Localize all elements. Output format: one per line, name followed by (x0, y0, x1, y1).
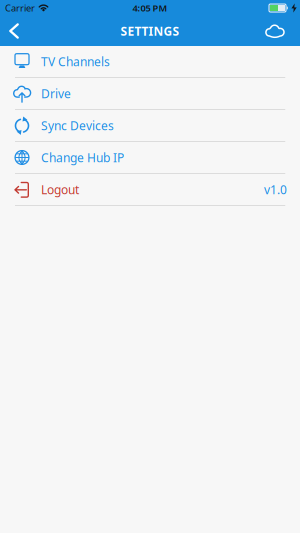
staticText: Logout (41, 181, 79, 197)
staticText: v1.0 (264, 181, 287, 197)
staticText: TV Channels (41, 53, 110, 69)
button[interactable] (263, 23, 300, 39)
staticText: Drive (41, 85, 71, 101)
button[interactable]: Drive (0, 78, 300, 110)
button[interactable]: Logout (0, 174, 300, 206)
staticText: Sync Devices (41, 117, 114, 133)
staticText: SETTINGS (120, 23, 179, 39)
button[interactable]: Sync Devices (0, 110, 300, 142)
button[interactable]: TV Channels (0, 46, 300, 78)
staticText: 4:05 PM (132, 2, 167, 14)
button[interactable]: Change Hub IP (0, 142, 300, 174)
staticText: Carrier (5, 2, 35, 14)
staticText: Change Hub IP (41, 149, 124, 165)
button[interactable] (0, 23, 19, 38)
